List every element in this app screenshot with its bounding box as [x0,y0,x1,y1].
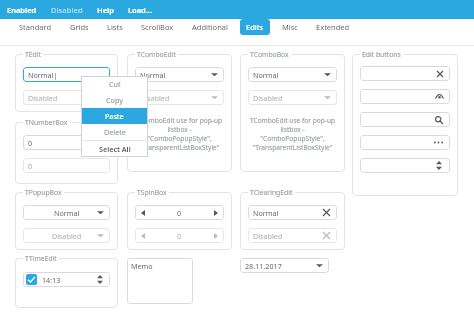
staticText: TClearingEdit [250,188,293,197]
button[interactable]: Disabled [248,228,337,243]
button[interactable]: 0 [23,135,110,150]
staticText: Normal [140,70,166,80]
button[interactable]: Copy [81,92,148,108]
staticText: TComboBox [250,50,289,59]
staticText: Disabled [52,231,82,241]
button[interactable]: Normal [23,205,110,220]
button[interactable]: Delete [81,124,148,140]
staticText: Disabled [140,93,170,103]
staticText: 28.11.2017 [245,261,282,271]
staticText: Misc [282,22,298,32]
button[interactable]: Enabled [26,274,37,285]
staticText: Paste [105,111,124,121]
button[interactable]: Grids [64,19,95,35]
staticText: Disabled [253,231,283,241]
button[interactable]: Standard [13,19,58,35]
button[interactable]: Edits [240,19,270,35]
staticText: Normal [54,208,80,218]
button[interactable]: Disabled [135,90,224,105]
button[interactable]: Disabled [248,90,337,105]
staticText: TComboEdit [137,50,176,59]
staticText: Disabled [28,93,58,103]
staticText: Normal [253,70,279,80]
staticText: ScrollBox [141,22,174,32]
staticText: 0 [28,138,33,148]
staticText: Enabled [7,5,37,15]
button[interactable]: Normal [248,67,337,82]
staticText: Normal [253,208,279,218]
button[interactable] [360,66,450,81]
button[interactable]: ScrollBox [135,19,180,35]
staticText: Standard [19,22,52,32]
staticText: Normal| [28,70,58,80]
button[interactable]: Misc [276,19,304,35]
staticText: 0 [28,161,33,171]
staticText: Extended [316,22,350,32]
staticText: Memo [131,261,153,271]
staticText: Delete [104,127,126,137]
staticText: Edit buttons [362,50,401,59]
staticText: Edits [246,22,264,32]
button[interactable]: Disabled [44,3,90,17]
button[interactable] [360,89,450,104]
button[interactable]: Enabled [0,3,44,17]
staticText: 0 [177,208,182,218]
button[interactable]: Load... [121,3,160,17]
staticText: Select All [99,144,131,154]
staticText: TEdit [25,50,41,59]
button[interactable] [360,158,450,173]
staticText: TComboEdit use for pop-up listbox - "Com… [133,116,226,152]
button[interactable]: Disabled [23,90,110,105]
staticText: Grids [70,22,89,32]
button[interactable]: Memo [127,258,193,304]
button[interactable]: Normal [135,67,224,82]
button[interactable]: Disabled [23,228,110,243]
button[interactable]: Normal [248,205,337,220]
button[interactable]: 0 [23,158,110,173]
staticText: Disabled [51,5,83,15]
button[interactable]: Paste [81,108,148,124]
staticText: Cut [109,79,121,89]
staticText: TPopupBox [25,188,62,197]
button[interactable]: Select All [81,141,148,157]
button[interactable]: Extended [310,19,356,35]
staticText: Additional [192,22,228,32]
button[interactable]: Help [90,3,121,17]
button[interactable]: Cut [81,76,148,92]
staticText: TNumberBox [25,118,68,127]
staticText: 14:13 [42,275,61,285]
staticText: Help [97,5,114,15]
staticText: TTimeEdit [25,254,57,263]
staticText: TComboEdit use for pop-up listbox - "Com… [246,116,339,152]
button[interactable]: Normal| [23,67,110,82]
button[interactable]: Enabled [23,272,110,287]
button[interactable]: Lists [101,19,129,35]
staticText: Load... [128,5,153,15]
button[interactable] [360,135,450,150]
button[interactable]: 0 [135,205,224,220]
staticText: TSpinBox [137,188,167,197]
staticText: 0 [177,231,182,241]
staticText: Copy [106,95,123,105]
staticText: Disabled [253,93,283,103]
button[interactable]: 28.11.2017 [240,258,329,273]
button[interactable]: Additional [186,19,234,35]
button[interactable] [360,112,450,127]
button[interactable]: 0 [135,228,224,243]
staticText: Lists [107,22,123,32]
